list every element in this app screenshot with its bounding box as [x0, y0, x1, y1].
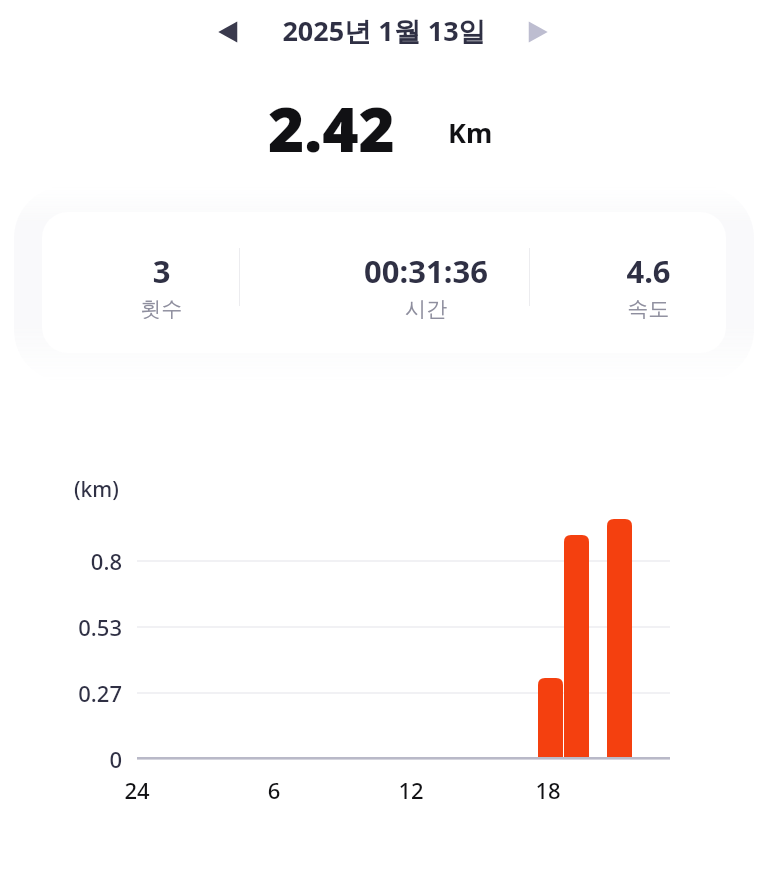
staticText: 3: [42, 250, 281, 292]
button[interactable]: Previous day: [198, 2, 258, 62]
staticText: 2025년 1월 13일: [258, 12, 510, 52]
button[interactable]: 4.6: [571, 212, 726, 353]
staticText: 0: [20, 744, 122, 774]
button[interactable]: 3: [42, 212, 726, 353]
button[interactable]: 00:31:36: [281, 212, 571, 353]
staticText: 속도: [571, 296, 726, 330]
staticText: 00:31:36: [281, 250, 571, 292]
staticText: 0.53: [20, 612, 122, 642]
button[interactable]: 3: [42, 212, 281, 353]
staticText: 18: [498, 775, 598, 807]
staticText: Km: [448, 114, 493, 151]
staticText: (km): [74, 475, 119, 504]
staticText: 0.27: [20, 678, 122, 708]
staticText: 시간: [281, 296, 571, 330]
staticText: 6: [224, 775, 324, 807]
button[interactable]: Next day: [508, 2, 568, 62]
staticText: 횟수: [42, 296, 281, 330]
staticText: 0.8: [20, 546, 122, 576]
staticText: 24: [87, 775, 187, 807]
staticText: 4.6: [571, 250, 726, 292]
staticText: 2.42: [268, 86, 395, 170]
staticText: 12: [361, 775, 461, 807]
